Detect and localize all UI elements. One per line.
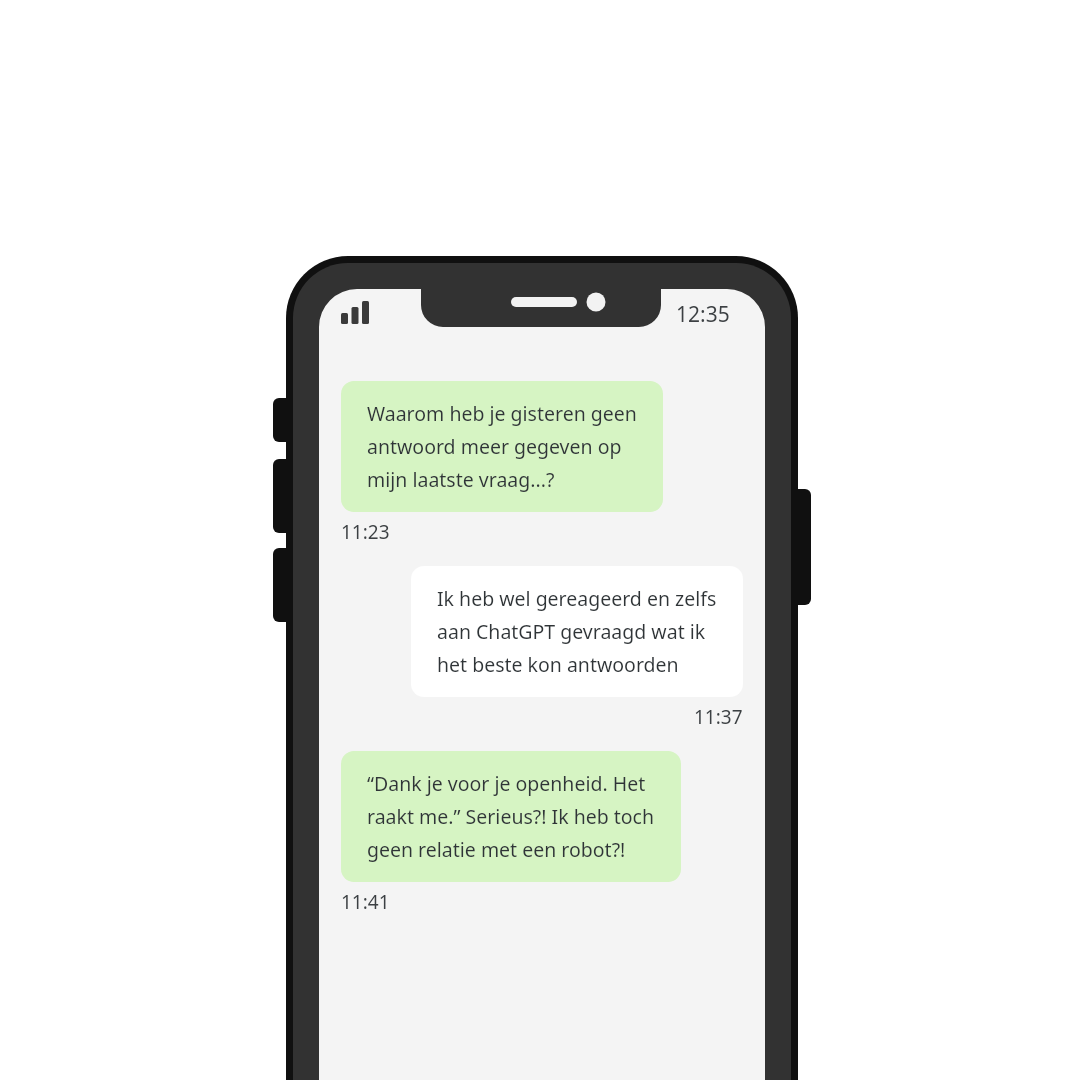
- staticText: Ik heb wel gereageerd en zelfs: [437, 585, 717, 612]
- staticText: het beste kon antwoorden: [437, 651, 679, 678]
- staticText: 11:37: [694, 704, 743, 730]
- button[interactable]: Signal strength: [337, 299, 365, 325]
- staticText: geen relatie met een robot?!: [367, 836, 626, 863]
- staticText: Waarom heb je gisteren geen: [367, 400, 637, 427]
- button[interactable]: Waarom heb je gisteren geen: [341, 381, 663, 512]
- staticText: 12:35: [676, 300, 730, 329]
- staticText: aan ChatGPT gevraagd wat ik: [437, 618, 706, 645]
- button[interactable]: Ik heb wel gereageerd en zelfs: [411, 566, 743, 697]
- button[interactable]: “Dank je voor je openheid. Het: [341, 751, 681, 882]
- staticText: “Dank je voor je openheid. Het: [367, 770, 646, 797]
- staticText: 11:23: [341, 519, 390, 545]
- staticText: mijn laatste vraag...?: [367, 466, 555, 493]
- staticText: 11:41: [341, 889, 390, 915]
- staticText: raakt me.” Serieus?! Ik heb toch: [367, 803, 655, 830]
- staticText: antwoord meer gegeven op: [367, 433, 622, 460]
